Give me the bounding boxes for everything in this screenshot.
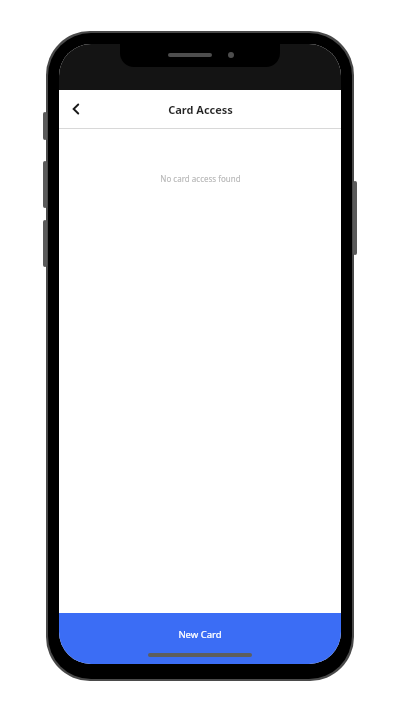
button[interactable]: New Card (59, 613, 341, 664)
staticText: New Card (178, 628, 222, 641)
button[interactable]: Back (59, 92, 93, 126)
staticText: Card Access (168, 102, 233, 117)
staticText: No card access found (160, 173, 241, 184)
